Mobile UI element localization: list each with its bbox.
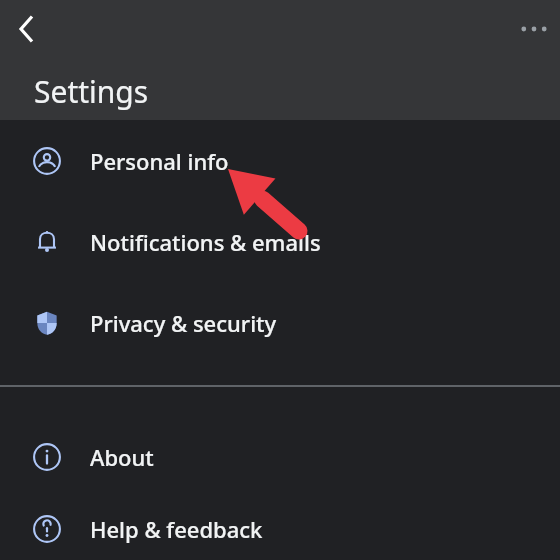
staticText: Personal info xyxy=(90,146,229,176)
button[interactable]: About xyxy=(0,416,560,497)
staticText: Settings xyxy=(34,71,149,112)
button[interactable]: Privacy & security xyxy=(0,282,560,363)
staticText: Help & feedback xyxy=(90,514,263,544)
staticText: About xyxy=(90,442,154,472)
button[interactable]: Back xyxy=(7,9,47,49)
button[interactable]: Personal info xyxy=(0,120,560,201)
staticText: Privacy & security xyxy=(90,308,277,338)
button[interactable]: More options xyxy=(514,9,554,49)
button[interactable]: Help & feedback xyxy=(0,497,560,560)
button[interactable]: Notifications & emails xyxy=(0,201,560,282)
staticText: Notifications & emails xyxy=(90,227,321,257)
